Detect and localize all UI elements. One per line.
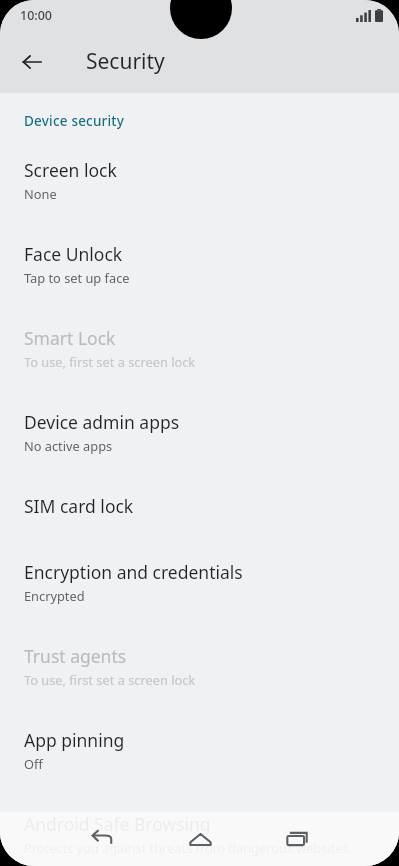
staticText: Tap to set up face <box>24 269 130 286</box>
staticText: Android Safe Browsing <box>24 812 211 836</box>
button[interactable]: SIM card lock <box>0 492 399 558</box>
button[interactable]: Android Safe Browsing <box>0 810 399 866</box>
staticText: Smart Lock <box>24 326 116 350</box>
staticText: Encryption and credentials <box>24 560 243 584</box>
staticText: Protects you against threats from danger… <box>24 839 349 856</box>
staticText: None <box>24 185 57 202</box>
button[interactable]: Screen lock <box>0 156 399 240</box>
button: Smart Lock <box>0 324 399 408</box>
staticText: 10:00 <box>20 7 53 24</box>
staticText: Device admin apps <box>24 410 180 434</box>
button[interactable]: Device admin apps <box>0 408 399 492</box>
button[interactable]: Face Unlock <box>0 240 399 324</box>
staticText: Security <box>86 47 165 76</box>
staticText: To use, first set a screen lock <box>24 671 196 688</box>
staticText: Face Unlock <box>24 242 123 266</box>
button[interactable]: Encryption and credentials <box>0 558 399 642</box>
button[interactable]: App pinning <box>0 726 399 810</box>
staticText: Device security <box>24 112 125 130</box>
staticText: Encrypted <box>24 587 85 604</box>
staticText: App pinning <box>24 728 125 752</box>
staticText: Screen lock <box>24 158 117 182</box>
button[interactable]: Back <box>78 815 126 863</box>
staticText: No active apps <box>24 437 113 454</box>
staticText: Trust agents <box>24 644 127 668</box>
button[interactable]: Recent apps <box>273 815 321 863</box>
staticText: To use, first set a screen lock <box>24 353 196 370</box>
staticText: SIM card lock <box>24 494 134 518</box>
staticText: Off <box>24 755 43 772</box>
button[interactable]: Home <box>176 815 224 863</box>
button[interactable]: Back <box>10 40 54 84</box>
button: Trust agents <box>0 642 399 726</box>
